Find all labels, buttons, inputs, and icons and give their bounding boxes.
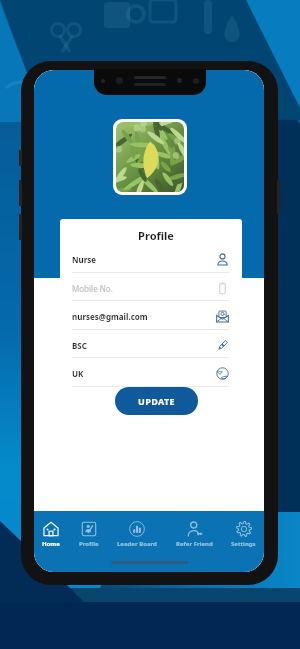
button[interactable]: BSC xyxy=(72,333,229,357)
other: Name xyxy=(216,253,229,266)
staticText: Leader Board xyxy=(117,540,157,548)
other: Home xyxy=(43,521,59,537)
staticText: Profile xyxy=(138,228,174,243)
button[interactable]: UK xyxy=(72,361,229,386)
button[interactable]: Nurse xyxy=(72,247,229,272)
staticText: Refer Friend xyxy=(176,540,213,548)
button[interactable]: UPDATE xyxy=(115,387,198,415)
button[interactable]: nurses@gmail.com xyxy=(72,304,229,329)
staticText: Mobile No. xyxy=(72,283,216,294)
other: Email xyxy=(216,310,229,323)
other: Country xyxy=(216,367,229,380)
other: Settings xyxy=(236,521,252,537)
button[interactable]: Mobile No. xyxy=(72,276,229,300)
other: Refer Friend xyxy=(187,521,203,537)
staticText: nurses@gmail.com xyxy=(72,311,216,322)
staticText: Profile xyxy=(79,540,99,548)
other: Mobile number xyxy=(216,282,229,295)
other: Profile xyxy=(81,521,97,537)
other: Qualification xyxy=(216,339,229,352)
button[interactable]: Refer Friend xyxy=(175,521,214,548)
staticText: UK xyxy=(72,368,216,379)
staticText: BSC xyxy=(72,340,216,351)
staticText: Nurse xyxy=(72,254,216,265)
button[interactable]: Profile xyxy=(78,521,100,548)
button[interactable]: Home xyxy=(41,521,61,548)
staticText: Home xyxy=(42,540,60,548)
staticText: UPDATE xyxy=(138,395,176,407)
button[interactable]: Leader Board xyxy=(116,521,158,548)
button[interactable]: Settings xyxy=(230,521,257,548)
other: Leader Board xyxy=(129,521,145,537)
staticText: Settings xyxy=(231,540,256,548)
